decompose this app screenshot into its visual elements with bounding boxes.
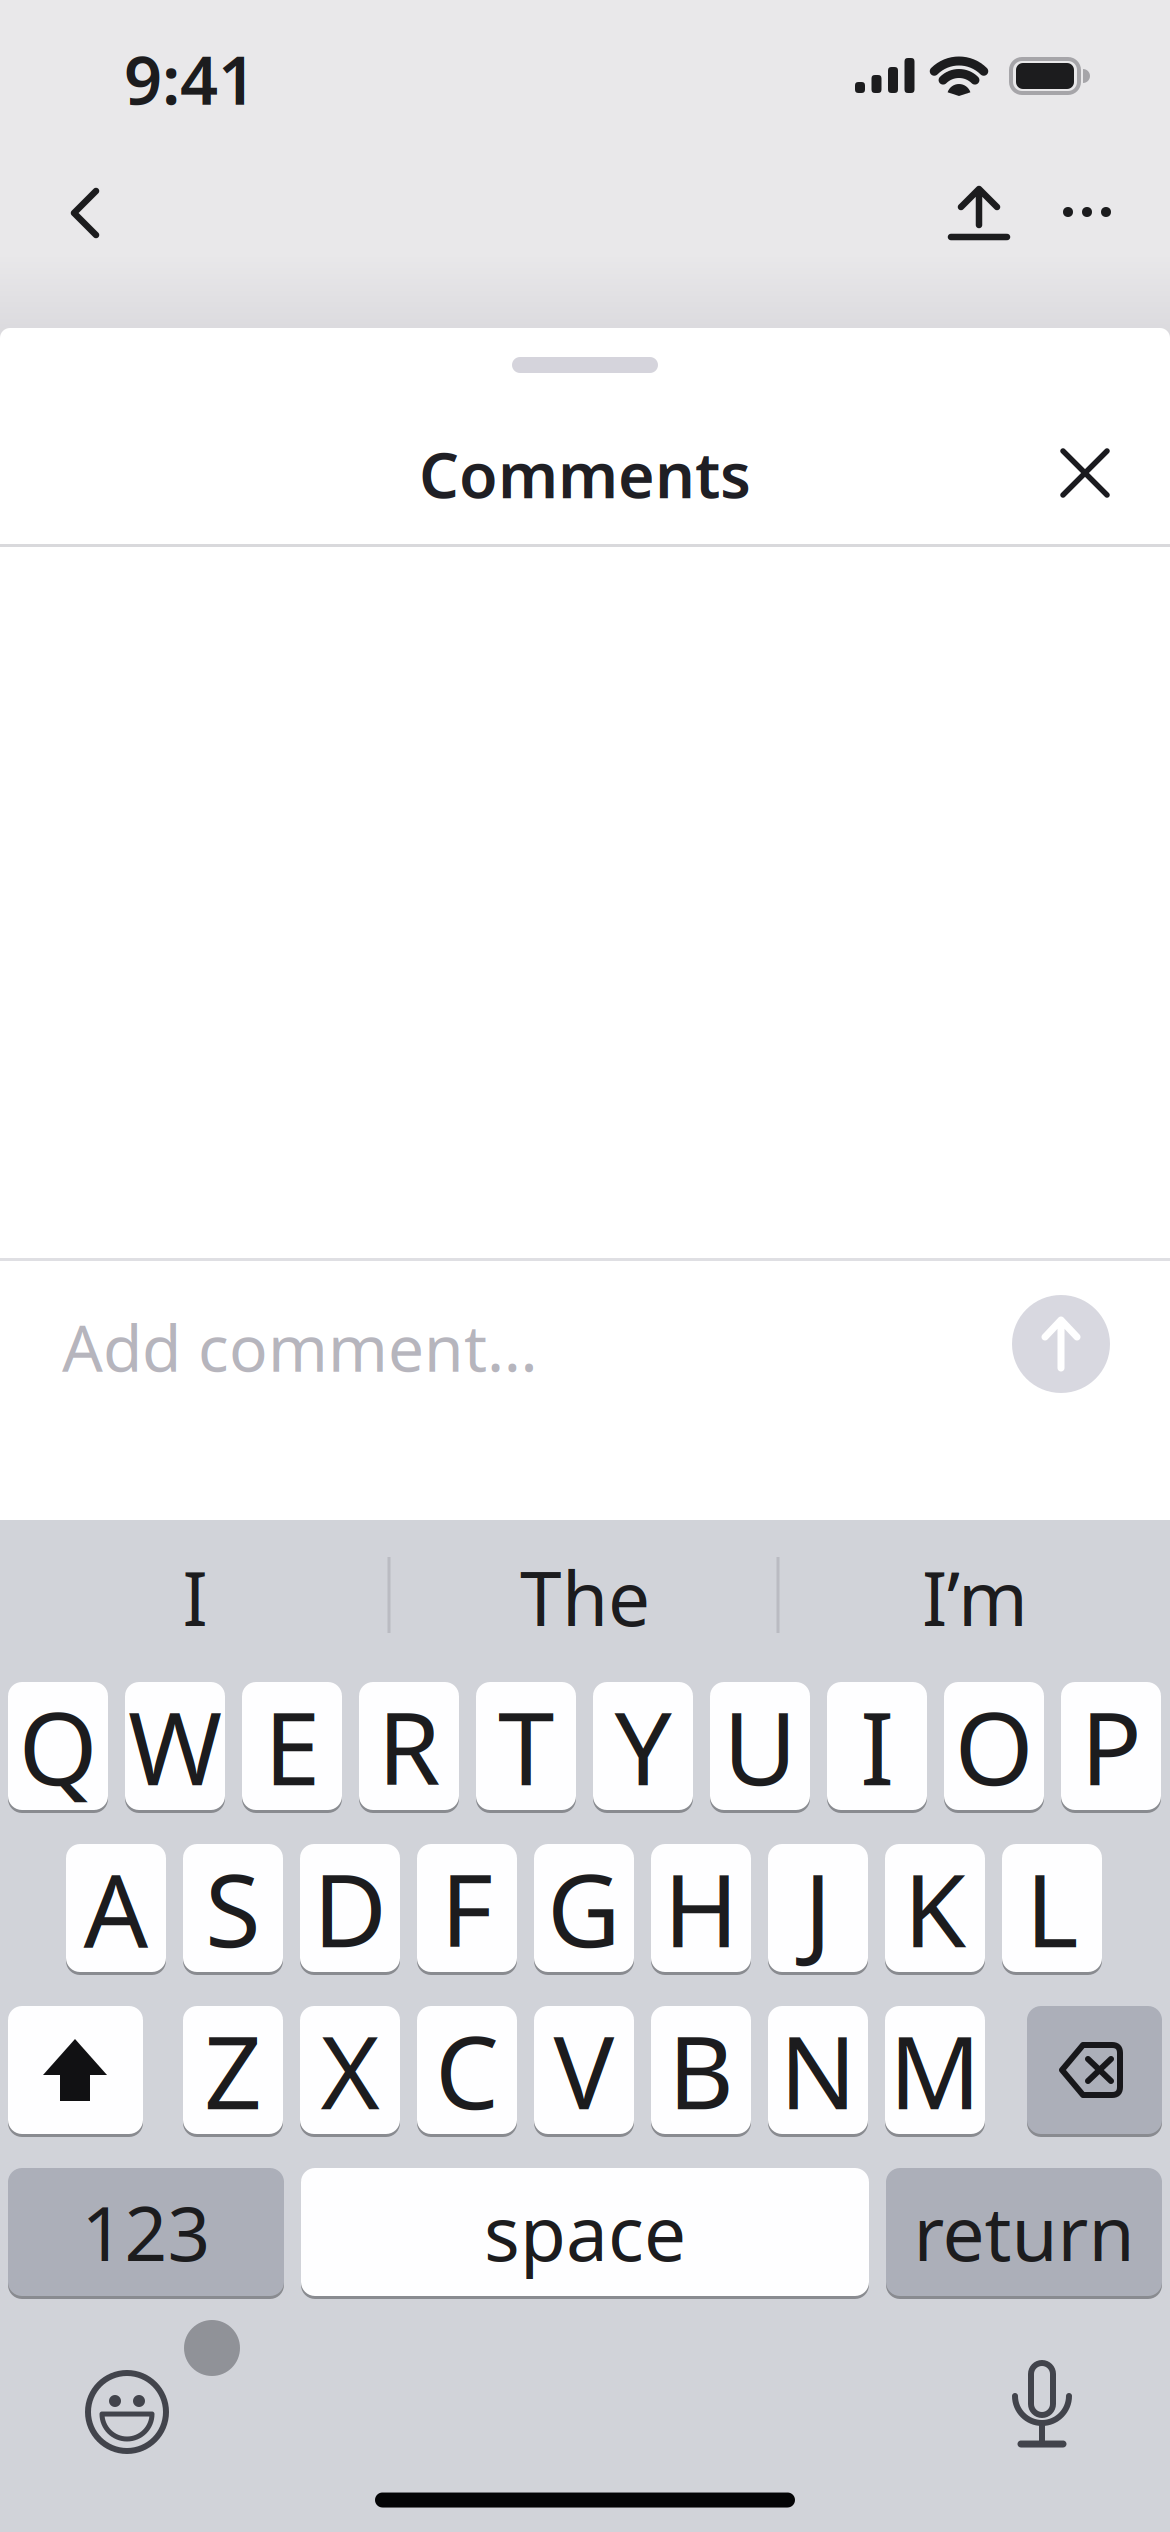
staticText: 9:41 [124,35,256,123]
staticText: Z [204,2003,262,2137]
button[interactable]: space [301,2166,869,2297]
staticText: F [440,1841,493,1975]
staticText: I [860,1679,894,1813]
staticText: G [547,1841,621,1975]
button[interactable]: Delete [1027,2004,1162,2135]
button[interactable]: M [885,2004,985,2135]
staticText: M [889,2003,981,2137]
staticText: D [313,1841,387,1975]
staticText: K [903,1841,966,1975]
staticText: I’m [922,1547,1028,1647]
button[interactable]: I [10,1542,380,1652]
button[interactable]: P [1061,1680,1161,1811]
button[interactable]: L [1002,1842,1102,1973]
staticText: 123 [81,2182,210,2282]
button[interactable]: T [476,1680,576,1811]
staticText: P [1080,1679,1141,1813]
staticText: Comments [419,432,751,516]
button[interactable]: A [66,1842,166,1973]
staticText: I [182,1547,207,1647]
button[interactable]: The [400,1542,770,1652]
staticText: return [913,2182,1134,2282]
button[interactable]: Dictate [987,2353,1097,2463]
staticText: Q [18,1679,97,1813]
staticText: C [435,2003,499,2137]
staticText: S [205,1841,261,1975]
staticText: Y [614,1679,671,1813]
button[interactable]: Add comment… [0,1287,950,1407]
staticText: Add comment… [62,1304,538,1389]
staticText: R [377,1679,440,1813]
staticText: space [484,2182,686,2282]
staticText: W [128,1679,222,1813]
button[interactable]: C [417,2004,517,2135]
staticText: O [954,1679,1033,1813]
button[interactable]: F [417,1842,517,1973]
button[interactable]: Send comment [1012,1295,1110,1393]
button[interactable]: R [359,1680,459,1811]
button[interactable]: Shift [8,2004,143,2135]
staticText: T [498,1679,554,1813]
staticText: The [520,1547,650,1647]
staticText: L [1025,1841,1078,1975]
button[interactable]: 123 [8,2166,284,2297]
button[interactable]: S [183,1842,283,1973]
staticText: N [779,2003,856,2137]
staticText: E [264,1679,320,1813]
button[interactable]: J [768,1842,868,1973]
button[interactable]: V [534,2004,634,2135]
button[interactable]: X [300,2004,400,2135]
button[interactable]: U [710,1680,810,1811]
staticText: V [553,2003,614,2137]
button[interactable]: I [827,1680,927,1811]
button[interactable]: K [885,1842,985,1973]
button[interactable]: Q [8,1680,108,1811]
staticText: U [723,1679,797,1813]
button[interactable]: E [242,1680,342,1811]
staticText: J [804,1841,832,1975]
staticText: H [663,1841,738,1975]
staticText: B [668,2003,734,2137]
staticText: X [320,2003,379,2137]
button[interactable]: O [944,1680,1044,1811]
button[interactable]: G [534,1842,634,1973]
button[interactable]: N [768,2004,868,2135]
button[interactable]: W [125,1680,225,1811]
button[interactable]: return [886,2166,1162,2297]
staticText: A [83,1841,148,1975]
button[interactable]: H [651,1842,751,1973]
button[interactable]: I’m [790,1542,1160,1652]
button[interactable]: B [651,2004,751,2135]
button[interactable]: Z [183,2004,283,2135]
button[interactable]: Emoji [72,2357,182,2467]
button[interactable]: D [300,1842,400,1973]
button[interactable]: Y [593,1680,693,1811]
